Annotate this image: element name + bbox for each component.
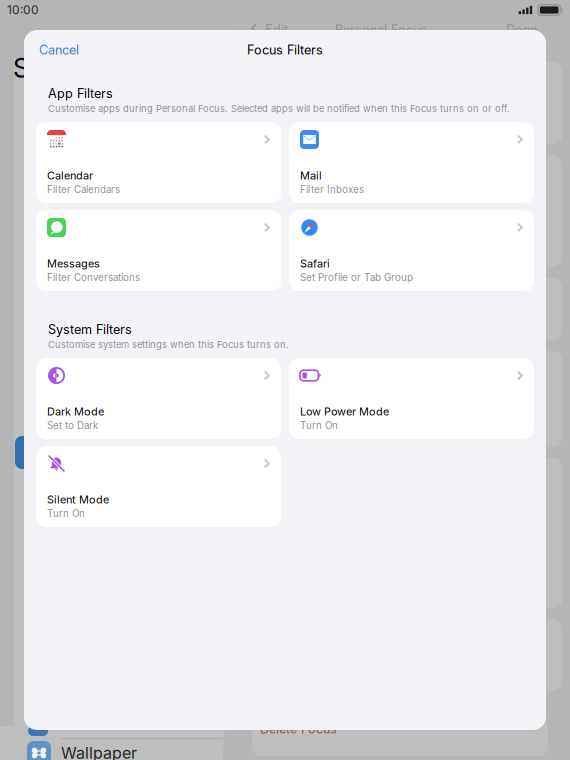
staticText: Focus Filters — [247, 42, 323, 58]
staticText: Mail — [300, 169, 322, 182]
staticText: Wallpaper — [61, 743, 137, 760]
button[interactable]: Calendar — [36, 122, 281, 203]
staticText: Turn On — [47, 508, 85, 519]
staticText: Delete Focus — [260, 721, 337, 737]
staticText: Filter Conversations — [47, 272, 140, 283]
staticText: Edit — [265, 22, 288, 37]
button[interactable]: Dark Mode — [36, 358, 281, 439]
staticText: Safari — [300, 257, 330, 270]
button[interactable]: Messages — [36, 210, 281, 291]
staticText: Dark Mode — [47, 405, 104, 418]
staticText: Turn On — [300, 420, 338, 431]
staticText: Cancel — [39, 42, 79, 58]
staticText: Set Profile or Tab Group — [300, 272, 413, 283]
button[interactable]: Silent Mode — [36, 446, 281, 527]
staticText: Low Power Mode — [300, 405, 389, 418]
staticText: Customise system settings when this Focu… — [48, 339, 289, 350]
staticText: App Filters — [48, 86, 113, 101]
staticText: Personal Focus — [335, 22, 427, 37]
staticText: Filter Inboxes — [300, 184, 364, 195]
button[interactable]: Safari — [289, 210, 534, 291]
staticText: Set to Dark — [47, 420, 98, 431]
button[interactable]: Cancel — [36, 36, 93, 64]
staticText: Customise apps during Personal Focus. Se… — [48, 103, 510, 114]
staticText: System Filters — [48, 322, 132, 337]
staticText: Messages — [47, 257, 100, 270]
button[interactable]: Low Power Mode — [289, 358, 534, 439]
button[interactable]: Mail — [289, 122, 534, 203]
staticText: 10:00 — [7, 3, 39, 17]
staticText: Settings — [13, 52, 113, 84]
staticText: Done — [506, 22, 537, 37]
staticText: Calendar — [47, 169, 93, 182]
staticText: Filter Calendars — [47, 184, 120, 195]
staticText: Silent Mode — [47, 493, 109, 506]
